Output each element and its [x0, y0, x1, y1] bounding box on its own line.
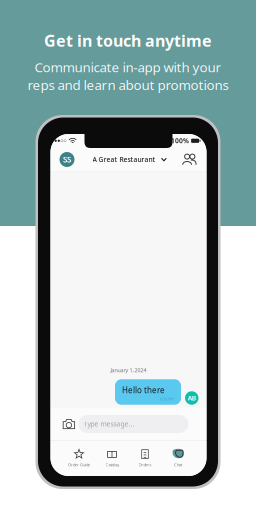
staticText: Type message...	[83, 420, 134, 428]
staticText: January 1, 2024	[110, 367, 146, 374]
staticText: Chat	[174, 462, 182, 467]
staticText: AB	[188, 394, 196, 402]
button[interactable]: A Great Restaurant	[89, 149, 167, 169]
staticText: SS	[63, 154, 71, 165]
staticText: Catalog	[105, 462, 118, 467]
staticText: 8:20 PM	[160, 396, 174, 401]
staticText: 100%	[171, 136, 189, 145]
button[interactable]: Order Guide	[62, 445, 95, 471]
button[interactable]: Account	[59, 152, 74, 167]
staticText: A Great Restaurant	[92, 155, 155, 164]
staticText: reps and learn about promotions	[27, 76, 228, 94]
button[interactable]: Catalog	[95, 445, 128, 471]
button[interactable]: Participants	[181, 153, 197, 166]
staticText: Orders	[138, 462, 151, 467]
button[interactable]: Chat	[161, 445, 194, 471]
button[interactable]: Camera	[62, 418, 75, 430]
staticText: Get in touch anytime	[44, 30, 212, 51]
button[interactable]: Orders	[128, 445, 161, 471]
staticText: Communicate in-app with your	[34, 58, 221, 76]
staticText: Order Guide	[68, 462, 90, 467]
staticText: Hello there	[122, 385, 165, 395]
